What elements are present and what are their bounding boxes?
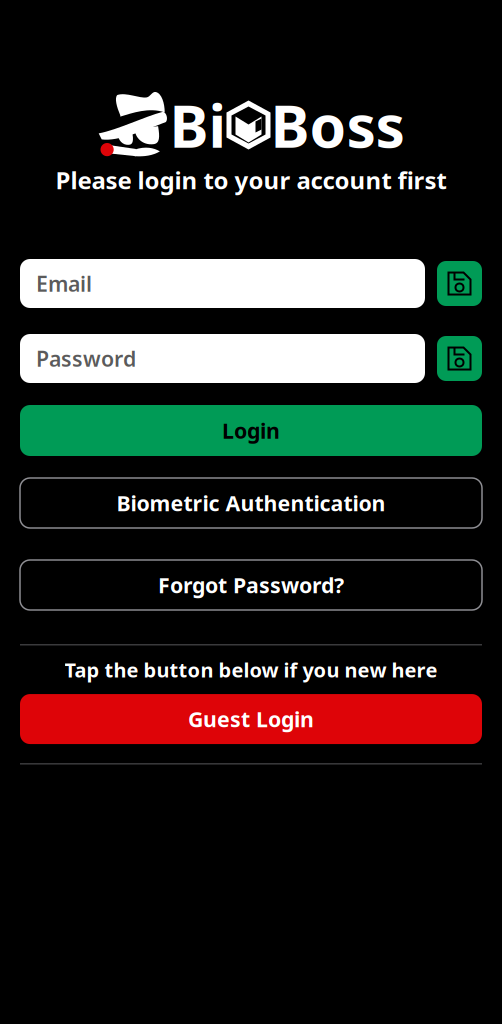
button[interactable]: Save Password — [437, 336, 482, 381]
staticText: Forgot Password? — [158, 571, 344, 599]
staticText: Bi — [169, 86, 226, 164]
staticText: Boss — [270, 86, 404, 164]
staticText: Biometric Authentication — [116, 489, 385, 517]
staticText: Email — [36, 269, 92, 298]
button[interactable]: Biometric Authentication — [20, 478, 482, 528]
staticText: Password — [36, 344, 136, 373]
staticText: Login — [222, 416, 280, 445]
staticText: Guest Login — [188, 705, 314, 733]
button[interactable]: Guest Login — [20, 694, 482, 744]
button[interactable]: Save Email — [437, 261, 482, 306]
staticText: Tap the button below if you new here — [64, 656, 437, 683]
staticText: Please login to your account first — [55, 164, 446, 196]
button[interactable]: Forgot Password? — [20, 560, 482, 610]
button[interactable]: Login — [20, 405, 482, 456]
